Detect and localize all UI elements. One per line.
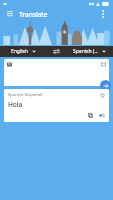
staticText: Translate	[19, 10, 48, 19]
button[interactable]: Listen	[98, 112, 105, 119]
button[interactable]: More options	[98, 9, 108, 19]
button[interactable]: Copy	[87, 112, 94, 119]
button[interactable]: Translate	[100, 80, 111, 91]
button[interactable]: Open navigation menu	[5, 9, 15, 19]
button[interactable]: Spanish (Español)	[4, 89, 109, 122]
staticText: English	[11, 48, 29, 55]
button[interactable]: Spanish (...	[66, 46, 113, 57]
button[interactable]: Source language	[7, 62, 12, 67]
staticText: Hola	[8, 100, 23, 109]
button[interactable]: Source language	[4, 59, 109, 86]
button[interactable]: Clear text	[101, 62, 106, 67]
button[interactable]: Swap languages	[46, 46, 66, 57]
staticText: Spanish (Español)	[8, 92, 43, 98]
button[interactable]: English	[0, 46, 46, 57]
staticText: Spanish (...	[73, 48, 99, 55]
button[interactable]: Save translation	[99, 92, 105, 98]
